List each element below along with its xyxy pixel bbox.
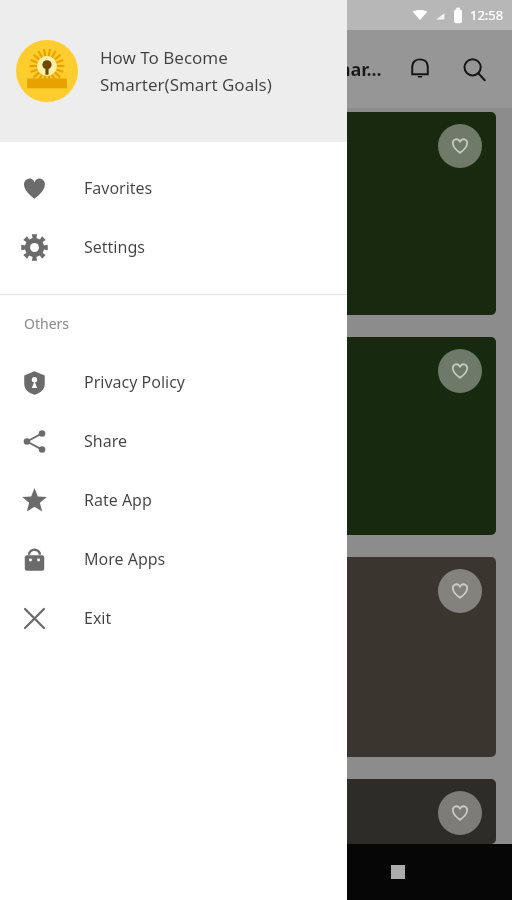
button[interactable]: Favorite: [16, 337, 496, 535]
button[interactable]: Exit: [0, 588, 347, 647]
staticText: How To Become Smarter(Smart Goals): [100, 46, 333, 96]
staticText: Share: [84, 430, 127, 452]
staticText: Settings: [84, 236, 145, 258]
button[interactable]: Favorite: [16, 557, 496, 757]
button[interactable]: Rate App: [0, 470, 347, 529]
button[interactable]: Settings: [0, 217, 347, 276]
staticText: Smarter: [16, 415, 93, 441]
button[interactable]: How To Become Smarter(Smart Goals): [0, 0, 347, 142]
button[interactable]: Recents: [370, 844, 426, 900]
button[interactable]: Notifications: [398, 47, 442, 91]
staticText: mar...: [333, 57, 382, 82]
button[interactable]: Privacy Policy: [0, 352, 347, 411]
button[interactable]: Favorite: [16, 112, 496, 315]
button[interactable]: Favorite: [438, 791, 482, 835]
button[interactable]: Favorite: [438, 124, 482, 168]
staticText: 12:58: [470, 6, 504, 24]
button[interactable]: More Apps: [0, 529, 347, 588]
staticText: More Apps: [84, 548, 166, 570]
staticText: Others: [24, 314, 70, 333]
button[interactable]: Favorite: [438, 349, 482, 393]
staticText: Rate App: [84, 489, 152, 511]
button[interactable]: Favorites: [0, 158, 347, 217]
button[interactable]: Search: [452, 47, 496, 91]
staticText: Exit: [84, 607, 112, 629]
button[interactable]: Share: [0, 411, 347, 470]
staticText: Do: [16, 193, 42, 219]
staticText: Favorites: [84, 177, 153, 199]
button[interactable]: Favorite: [438, 569, 482, 613]
button[interactable]: Favorite: [16, 779, 496, 844]
staticText: Privacy Policy: [84, 371, 185, 393]
